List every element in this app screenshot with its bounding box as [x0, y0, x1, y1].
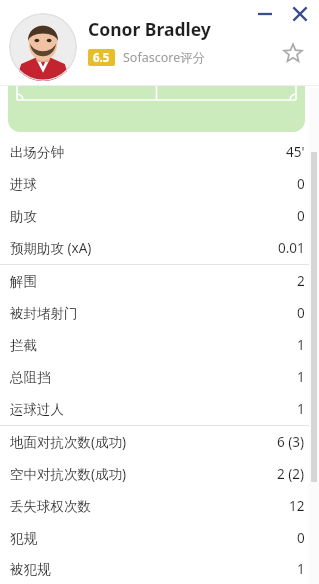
staticText: 犯规 [10, 530, 37, 547]
button[interactable]: 地面对抗次数(成功) [0, 426, 319, 458]
staticText: 2 (2) [277, 465, 305, 483]
button[interactable]: 运球过人 [0, 393, 319, 425]
staticText: 丢失球权次数 [10, 498, 91, 515]
staticText: 被犯规 [10, 561, 51, 578]
button[interactable]: 出场分钟 [0, 136, 319, 168]
staticText: 运球过人 [10, 401, 64, 418]
staticText: 拦截 [10, 337, 37, 354]
staticText: 预期助攻 (xA) [10, 239, 92, 257]
button[interactable]: 解围 [0, 265, 319, 297]
staticText: 0 [297, 175, 305, 193]
button[interactable]: 预期助攻 (xA) [0, 232, 319, 264]
staticText: 6.5 [93, 50, 110, 66]
staticText: 1 [297, 336, 305, 354]
staticText: 进球 [10, 176, 37, 193]
staticText: 1 [297, 368, 305, 386]
button[interactable]: 空中对抗次数(成功) [0, 458, 319, 490]
button[interactable]: 被封堵射门 [0, 297, 319, 329]
staticText: 1 [297, 400, 305, 418]
staticText: 45' [286, 143, 305, 161]
button[interactable]: Add to favourites [276, 36, 310, 70]
staticText: 解围 [10, 273, 37, 290]
staticText: 0 [297, 304, 305, 322]
staticText: 助攻 [10, 208, 37, 225]
button[interactable]: 进球 [0, 168, 319, 200]
staticText: 总阻挡 [10, 369, 51, 386]
staticText: 0 [297, 207, 305, 225]
staticText: 1 [297, 560, 305, 578]
staticText: 12 [289, 497, 305, 515]
button[interactable]: 总阻挡 [0, 361, 319, 393]
button[interactable]: 助攻 [0, 200, 319, 232]
staticText: 2 [297, 272, 305, 290]
button[interactable]: 拦截 [0, 329, 319, 361]
button[interactable]: Close [286, 0, 314, 28]
staticText: 地面对抗次数(成功) [10, 433, 127, 451]
button[interactable]: 犯规 [0, 522, 319, 554]
staticText: 出场分钟 [10, 144, 64, 161]
staticText: 0 [297, 529, 305, 547]
staticText: 0.01 [278, 239, 305, 257]
button[interactable]: 被犯规 [0, 554, 319, 584]
staticText: 被封堵射门 [10, 305, 78, 322]
button[interactable]: 丢失球权次数 [0, 490, 319, 522]
staticText: Conor Bradley [88, 17, 211, 41]
staticText: 6 (3) [277, 433, 305, 451]
staticText: 空中对抗次数(成功) [10, 465, 127, 483]
staticText: Sofascore评分 [123, 49, 206, 66]
button[interactable]: Minimize [251, 0, 279, 28]
